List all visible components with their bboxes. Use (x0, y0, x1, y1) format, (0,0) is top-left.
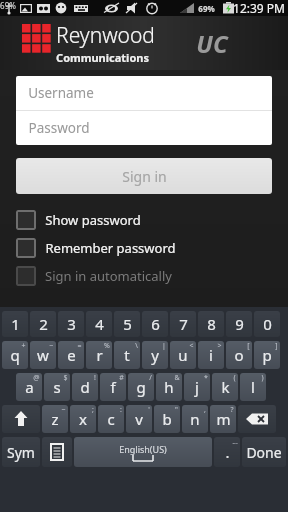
staticText: 69% (198, 3, 215, 14)
button[interactable]: 1 (2, 311, 28, 337)
button[interactable]: r (86, 341, 112, 369)
button[interactable]: Sign in (16, 158, 272, 194)
staticText: $ (63, 373, 68, 383)
staticText: p (262, 345, 272, 365)
button[interactable]: b (154, 405, 180, 433)
button[interactable]: 8 (198, 311, 224, 337)
button[interactable]: n (182, 405, 208, 433)
button[interactable]: Show password (16, 210, 272, 230)
button[interactable]: Sym (2, 437, 40, 467)
button[interactable]: u (170, 341, 196, 369)
staticText: + (21, 341, 26, 351)
button[interactable]: s (44, 373, 70, 401)
staticText: 8 (207, 314, 216, 334)
button[interactable]: v (126, 405, 152, 433)
button[interactable]: 2 (30, 311, 56, 337)
button[interactable]: 4 (86, 311, 112, 337)
staticText: Sign in (122, 167, 167, 186)
button[interactable]: e (58, 341, 84, 369)
button[interactable]: q (2, 341, 28, 369)
staticText: e (67, 345, 76, 365)
button[interactable]: a (16, 373, 42, 401)
staticText: [ (247, 341, 250, 351)
staticText: 0 (263, 314, 272, 334)
button[interactable]: m (210, 405, 236, 433)
staticText: i (209, 345, 213, 365)
button[interactable]: k (212, 373, 238, 401)
staticText: # (119, 373, 124, 383)
button[interactable]: 7 (170, 311, 196, 337)
button[interactable]: Username (16, 76, 272, 110)
staticText: f (110, 377, 116, 397)
button[interactable]: j (184, 373, 210, 401)
button[interactable]: h (156, 373, 182, 401)
staticText: 2 (39, 314, 48, 334)
staticText: r (96, 345, 103, 365)
button[interactable]: z (42, 405, 68, 433)
button[interactable]: f (100, 373, 126, 401)
staticText: 12:39 PM (233, 0, 285, 16)
staticText: h (164, 377, 174, 397)
staticText: English(US) (119, 443, 167, 455)
button[interactable]: 6 (142, 311, 168, 337)
button[interactable]: Password (16, 111, 272, 145)
staticText: x (79, 409, 87, 429)
staticText: & (174, 373, 180, 383)
button[interactable]: 5 (114, 311, 140, 337)
button[interactable]: Done (242, 437, 286, 467)
staticText: Username (28, 84, 94, 102)
button[interactable]: Remember password (16, 238, 272, 258)
staticText: ( (233, 373, 236, 383)
staticText: 9 (235, 314, 244, 334)
button[interactable]: 0 (254, 311, 280, 337)
staticText: \ (135, 341, 138, 351)
button[interactable]: . (214, 437, 240, 467)
staticText: Show password (45, 211, 141, 229)
staticText: ] (275, 341, 278, 351)
button[interactable]: x (70, 405, 96, 433)
button[interactable]: Clipboard (42, 437, 72, 467)
staticText: u (178, 345, 188, 365)
staticText: 3 (67, 314, 76, 334)
staticText: Sign in automatically (45, 267, 172, 285)
staticText: / (149, 373, 152, 383)
staticText: m (216, 409, 231, 429)
staticText: ' (148, 405, 150, 415)
button[interactable]: d (72, 373, 98, 401)
button[interactable]: y (142, 341, 168, 369)
staticText: ? (230, 405, 234, 415)
button[interactable]: w (30, 341, 56, 369)
button[interactable]: i (198, 341, 224, 369)
staticText: 1 (11, 314, 20, 334)
button[interactable]: c (98, 405, 124, 433)
button[interactable]: l (240, 373, 266, 401)
staticText: Communications (56, 50, 149, 65)
staticText: Reynwood (56, 21, 155, 50)
button[interactable]: p (254, 341, 280, 369)
staticText: . (225, 442, 230, 462)
staticText: y (151, 345, 159, 365)
staticText: * (204, 373, 208, 383)
staticText: ... (232, 437, 238, 447)
staticText: w (37, 345, 49, 365)
button[interactable]: Backspace (238, 405, 276, 433)
button[interactable]: 3 (58, 311, 84, 337)
button[interactable]: Sign in automatically (16, 266, 272, 286)
button[interactable]: Space (74, 437, 212, 467)
staticText: Password (28, 119, 90, 137)
staticText: Sym (7, 443, 35, 462)
staticText: = (77, 341, 82, 351)
staticText: n (190, 409, 200, 429)
button[interactable]: g (128, 373, 154, 401)
staticText: k (221, 377, 230, 397)
staticText: a (25, 377, 34, 397)
button[interactable]: o (226, 341, 252, 369)
button[interactable]: Shift (2, 405, 40, 433)
staticText: l (251, 377, 255, 397)
button[interactable]: t (114, 341, 140, 369)
staticText: j (195, 377, 199, 397)
staticText: 5 (123, 314, 132, 334)
staticText: ; (92, 405, 94, 415)
staticText: % (104, 341, 110, 351)
button[interactable]: 9 (226, 311, 252, 337)
